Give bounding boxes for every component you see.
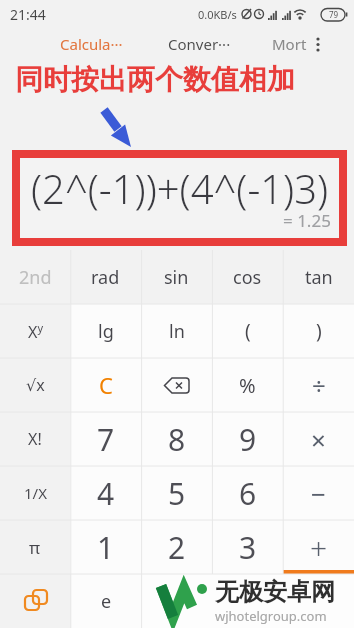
staticText: rad	[91, 265, 120, 290]
staticText: 9	[239, 419, 257, 460]
staticText: 无极安卓网	[215, 577, 335, 607]
staticText: 6	[239, 473, 257, 514]
staticText: √x	[26, 374, 45, 396]
staticText: 5	[168, 473, 186, 514]
staticText: 1	[97, 527, 115, 568]
staticText: %	[239, 372, 256, 399]
staticText: 2nd	[19, 265, 52, 290]
staticText: = 1.25	[283, 209, 331, 232]
staticText: tan	[305, 265, 333, 290]
staticText: 2	[168, 527, 186, 568]
staticText: −	[311, 476, 326, 511]
staticText: π	[29, 536, 41, 559]
staticText: C	[99, 370, 113, 400]
staticText: 1/X	[24, 483, 47, 503]
staticText: 0.0KB/s	[198, 7, 237, 22]
staticText: 8	[168, 419, 186, 460]
staticText: 3	[239, 527, 257, 568]
staticText: 79	[329, 9, 339, 20]
staticText: 21:44	[10, 5, 46, 24]
staticText: ln	[169, 319, 185, 344]
staticText: 4	[97, 473, 115, 514]
staticText: Xy	[28, 320, 43, 342]
staticText: e	[101, 589, 112, 614]
staticText: wjhotelgroup.com	[215, 607, 327, 625]
staticText: X!	[28, 428, 42, 450]
staticText: sin	[164, 265, 189, 290]
staticText: 同时按出两个数值相加	[15, 62, 295, 97]
staticText: (2^(-1))+(4^(-1)3)	[31, 161, 329, 215]
staticText: ÷	[312, 369, 326, 402]
staticText: 7	[97, 419, 115, 460]
staticText: Conver···	[168, 34, 231, 54]
staticText: (	[245, 318, 251, 344]
staticText: Mort	[272, 34, 307, 54]
staticText: ×	[311, 422, 326, 457]
staticText: Calcula···	[60, 34, 123, 54]
staticText: +	[310, 527, 328, 568]
staticText: )	[316, 318, 322, 344]
staticText: cos	[233, 265, 262, 290]
staticText: lg	[98, 319, 114, 344]
